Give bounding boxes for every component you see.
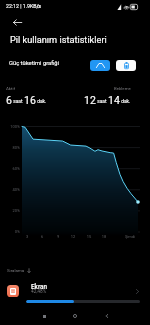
staticText: Ekran xyxy=(31,283,48,291)
button[interactable]: Back xyxy=(98,307,116,325)
staticText: 16 xyxy=(24,94,36,106)
button[interactable]: Sıralama xyxy=(7,268,31,273)
staticText: 42,48% xyxy=(31,289,47,295)
button[interactable]: Battery level xyxy=(116,60,136,71)
button[interactable]: Home xyxy=(66,307,84,325)
staticText: Aktif xyxy=(6,86,16,91)
staticText: 60% xyxy=(0,166,20,171)
button[interactable]: Recents xyxy=(35,307,53,325)
staticText: Bekleme xyxy=(114,86,131,91)
staticText: Pil kullanım istatistikleri xyxy=(10,34,107,45)
staticText: 18 xyxy=(97,234,111,239)
staticText: 22:12 | 1.9KB/s xyxy=(6,3,42,9)
staticText: Sıralama xyxy=(7,268,25,273)
staticText: 9 xyxy=(51,234,65,239)
staticText: 6 xyxy=(35,234,49,239)
staticText: dak. xyxy=(120,99,131,105)
staticText: saat xyxy=(12,99,24,105)
staticText: 15 xyxy=(82,234,96,239)
staticText: 40% xyxy=(0,187,20,192)
staticText: 3 xyxy=(20,234,34,239)
staticText: 6 xyxy=(6,94,12,106)
staticText: 14 xyxy=(108,94,120,106)
staticText: 20% xyxy=(0,208,20,213)
button[interactable]: Back xyxy=(6,14,28,31)
staticText: 12 xyxy=(66,234,80,239)
staticText: 12 xyxy=(84,94,96,106)
staticText: saat xyxy=(96,99,108,105)
staticText: 80% xyxy=(0,145,20,150)
staticText: Şimdi xyxy=(121,234,139,239)
staticText: Güç tüketimi grafiği xyxy=(9,60,60,67)
staticText: 0% xyxy=(0,229,20,234)
button[interactable]: Power consumption graph xyxy=(90,60,110,71)
button[interactable]: Ekran xyxy=(0,279,150,306)
staticText: 100% xyxy=(0,124,20,129)
staticText: dak. xyxy=(36,99,47,105)
